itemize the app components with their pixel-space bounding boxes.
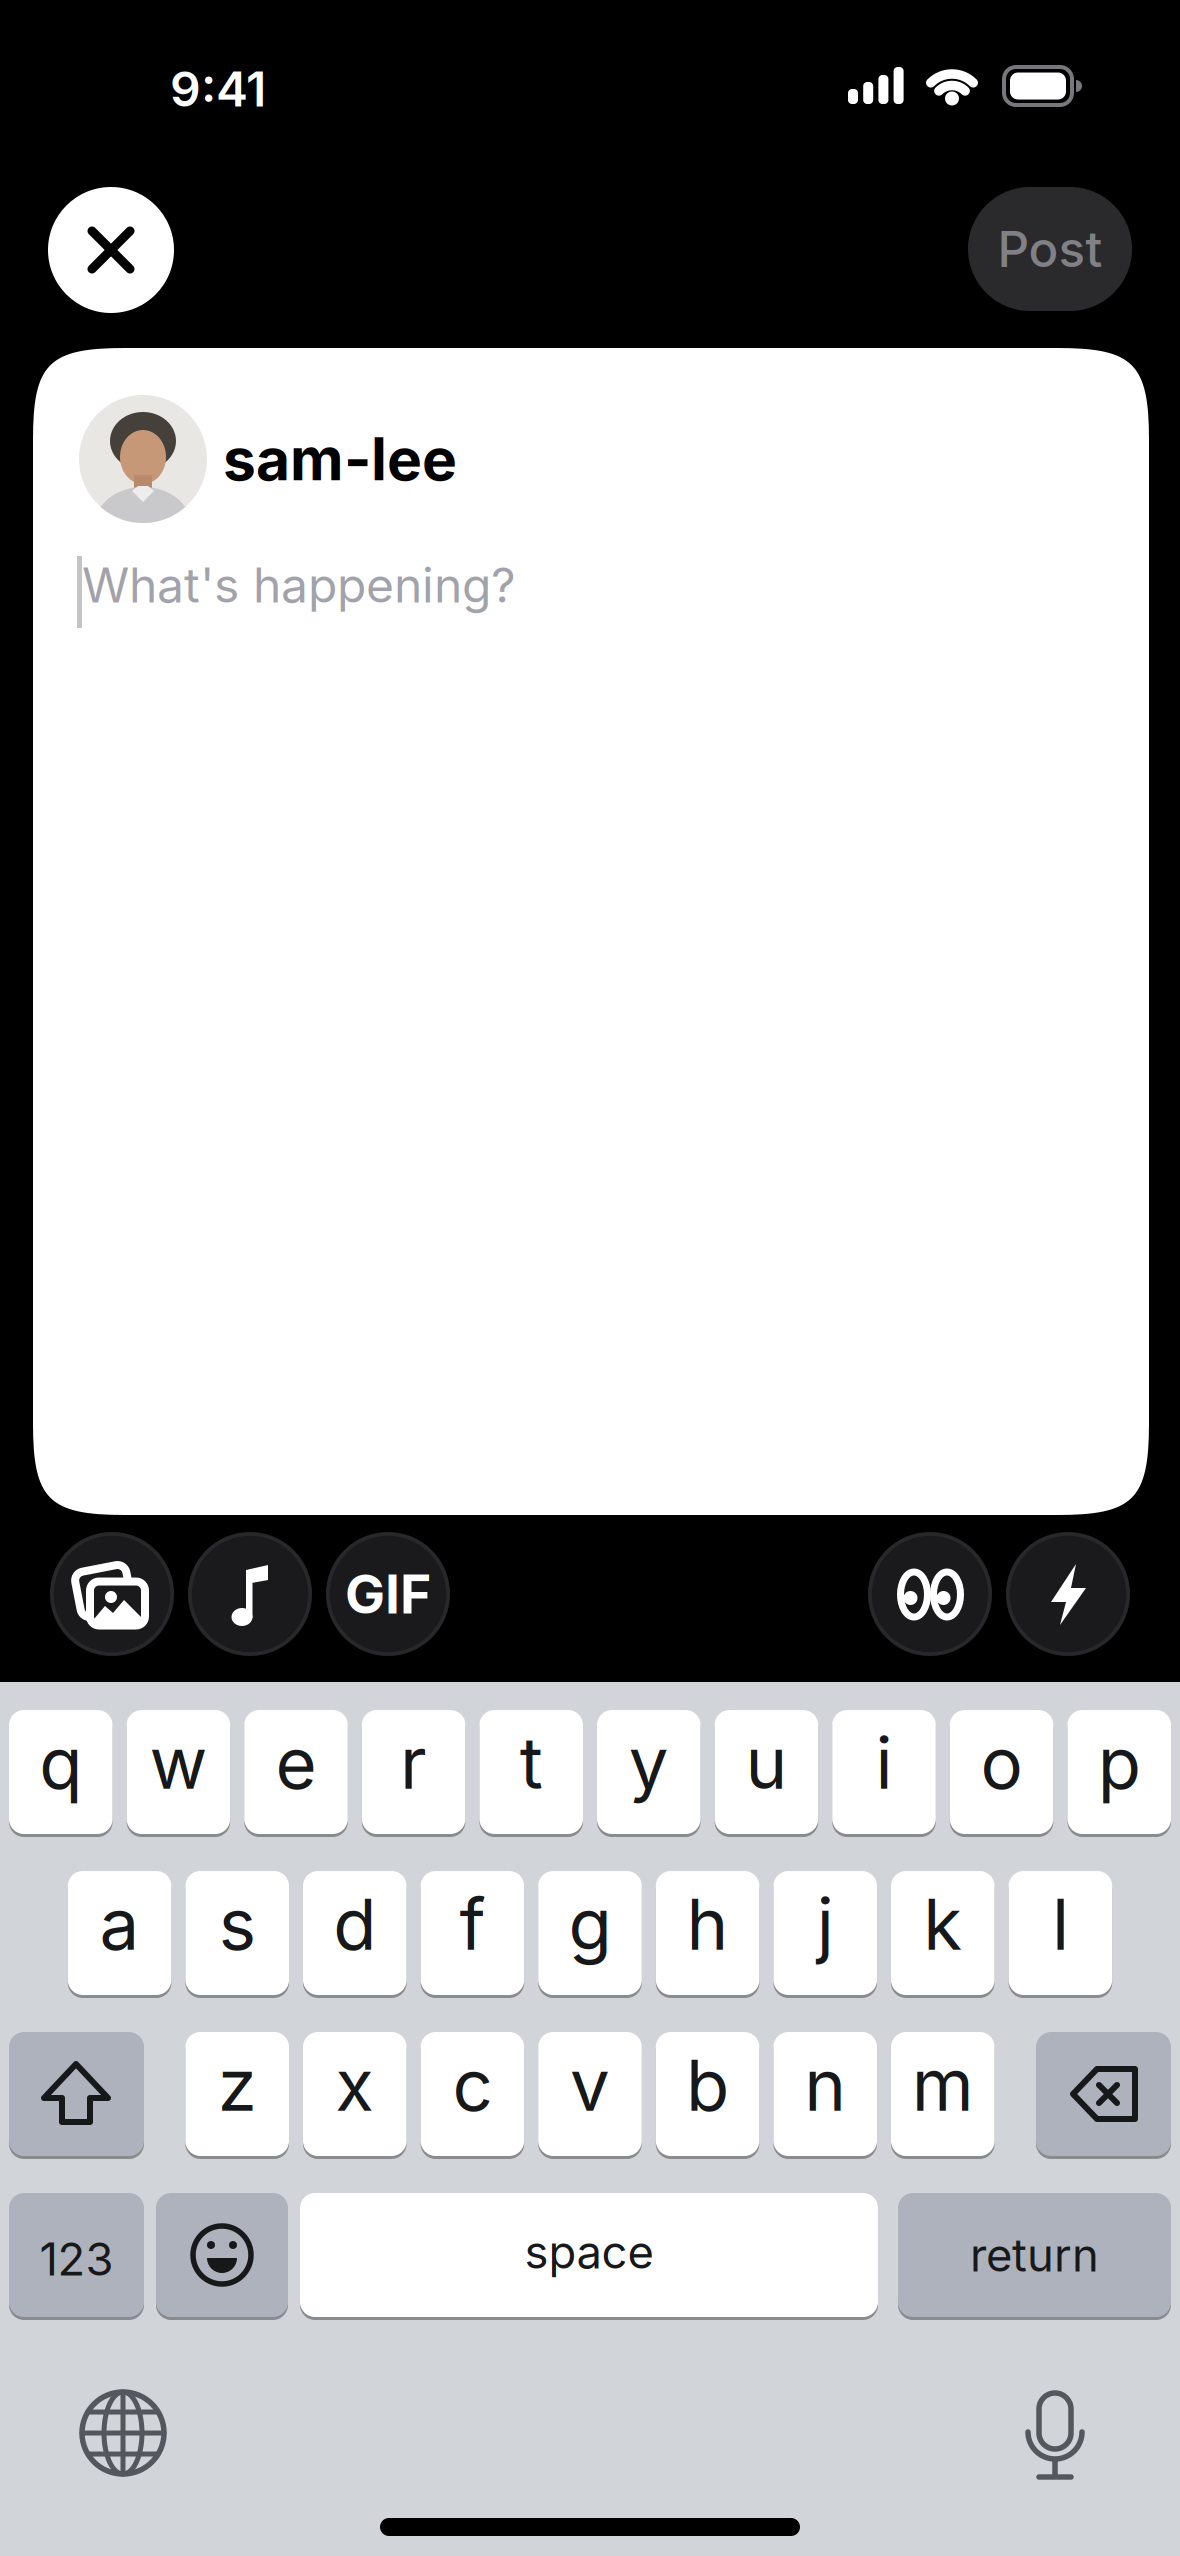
staticText: p [1098,1721,1141,1805]
staticText: return [970,2228,1099,2282]
button[interactable]: v [538,2030,642,2157]
button[interactable]: Boost [1006,1532,1130,1656]
staticText: t [520,1721,543,1805]
button[interactable]: Numbers [9,2191,144,2318]
button[interactable]: k [891,1869,995,1996]
staticText: k [923,1882,962,1966]
button[interactable]: Add GIF [326,1532,450,1656]
button[interactable]: t [479,1708,583,1835]
staticText: d [333,1882,376,1966]
button[interactable]: z [185,2030,289,2157]
button[interactable]: Dictate [995,2373,1115,2493]
staticText: q [39,1721,82,1805]
button[interactable]: d [303,1869,407,1996]
staticText: What's happening? [82,557,516,613]
button[interactable]: Delete [1036,2030,1171,2157]
staticText: a [100,1882,140,1966]
staticText: h [687,1882,729,1966]
button[interactable]: f [421,1869,524,1996]
button[interactable]: r [362,1708,465,1835]
button[interactable]: a [68,1869,171,1996]
button[interactable]: i [832,1708,936,1835]
staticText: y [629,1721,669,1805]
staticText: z [218,2043,257,2127]
staticText: Post [997,220,1102,278]
staticText: i [875,1721,892,1805]
staticText: c [452,2043,492,2127]
staticText: b [686,2043,729,2127]
staticText: w [149,1721,207,1805]
staticText: g [568,1882,611,1966]
button[interactable]: w [127,1708,230,1835]
button[interactable]: b [656,2030,759,2157]
button[interactable]: y [597,1708,701,1835]
button[interactable]: q [9,1708,113,1835]
staticText: r [400,1721,427,1805]
staticText: f [459,1882,485,1966]
button[interactable]: Next keyboard [63,2373,183,2493]
button[interactable]: n [773,2030,877,2157]
button[interactable]: c [421,2030,524,2157]
staticText: o [981,1721,1023,1805]
staticText: GIF [345,1562,431,1625]
button[interactable]: Add music [188,1532,312,1656]
button[interactable]: space [300,2191,878,2318]
button[interactable]: j [773,1869,877,1996]
staticText: 9:41 [170,61,266,117]
button[interactable]: Add photo [50,1532,174,1656]
button[interactable]: Eyes [868,1532,992,1656]
staticText: 123 [39,2232,113,2286]
button[interactable]: Emoji [156,2191,288,2318]
staticText: m [912,2043,974,2127]
button[interactable]: x [303,2030,407,2157]
staticText: v [570,2043,610,2127]
staticText: space [524,2225,653,2279]
staticText: u [745,1721,787,1805]
staticText: s [219,1882,256,1966]
button[interactable]: s [185,1869,289,1996]
staticText: sam-lee [223,424,457,494]
staticText: j [817,1882,834,1966]
staticText: x [335,2043,374,2127]
button[interactable]: Shift [9,2030,144,2157]
button[interactable]: o [950,1708,1053,1835]
button[interactable]: m [891,2030,995,2157]
button[interactable]: h [656,1869,759,1996]
button[interactable]: Close [48,187,174,313]
staticText: e [275,1721,316,1805]
staticText: n [804,2043,846,2127]
button[interactable]: return [898,2191,1171,2318]
button[interactable]: Post [968,187,1132,311]
button[interactable]: p [1067,1708,1171,1835]
staticText: l [1052,1882,1069,1966]
button[interactable]: e [244,1708,348,1835]
button[interactable]: u [715,1708,818,1835]
button[interactable]: l [1009,1869,1112,1996]
button[interactable]: g [538,1869,642,1996]
